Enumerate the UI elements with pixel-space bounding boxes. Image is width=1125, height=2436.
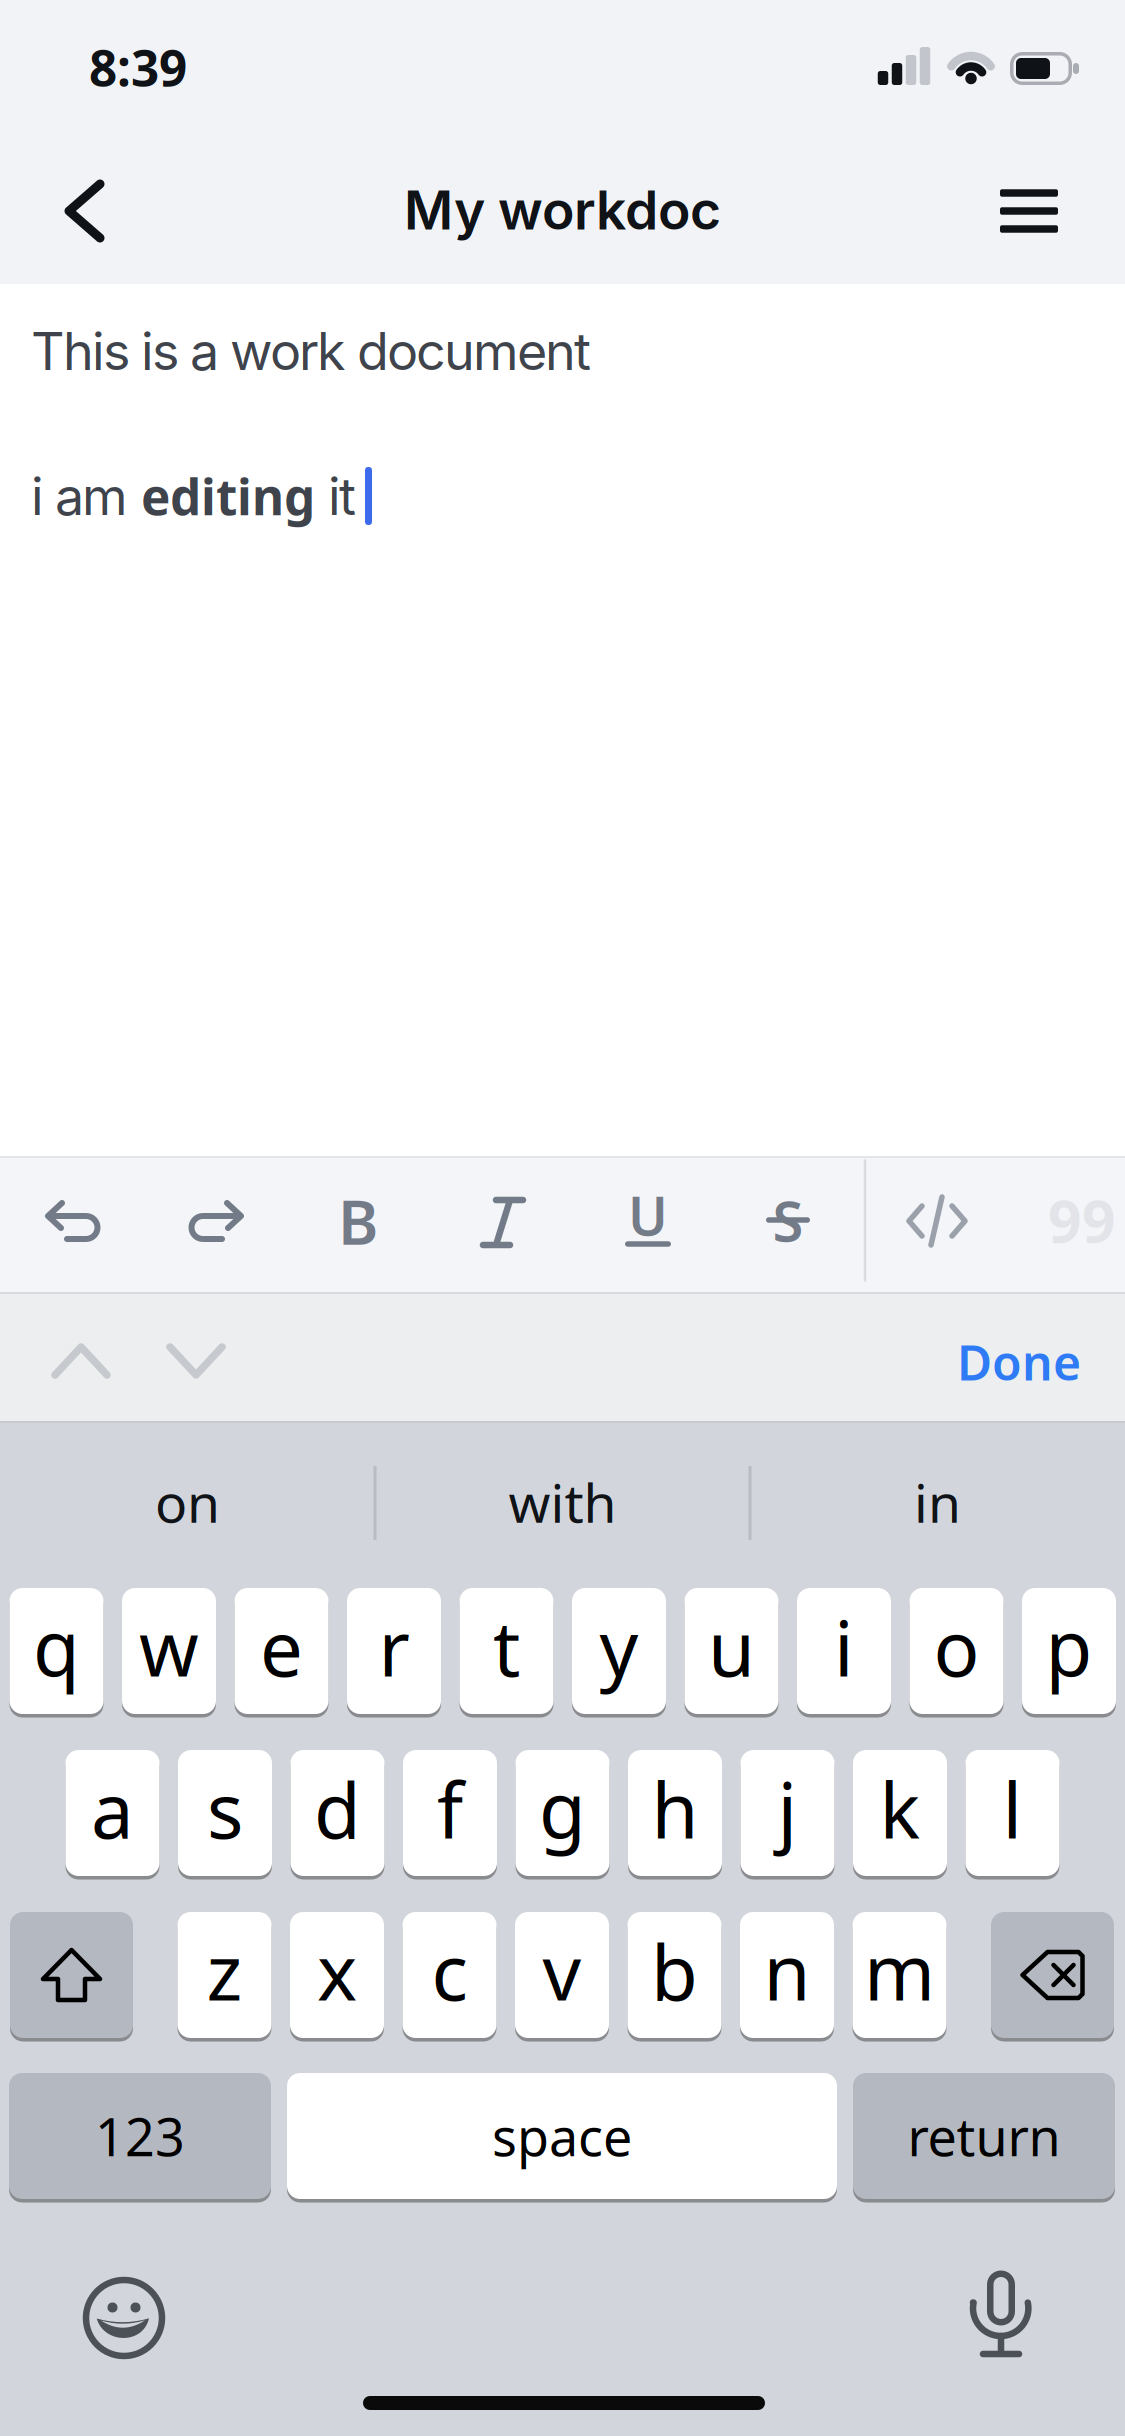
staticText: u [708,1596,755,1697]
button[interactable]: Done [957,1330,1081,1394]
staticText: m [864,1920,935,2021]
button[interactable]: m [852,1912,946,2038]
staticText: s [207,1758,243,1859]
staticText: t [493,1596,520,1697]
button[interactable]: 123 [9,2073,271,2199]
button[interactable]: h [628,1750,722,1876]
button[interactable] [481,1193,525,1251]
staticText: w [139,1596,199,1697]
staticText: c [431,1920,467,2021]
button[interactable] [45,1192,105,1252]
staticText: Done [957,1330,1081,1394]
staticText: space [492,2101,632,2171]
button[interactable]: p [1022,1588,1116,1714]
button[interactable]: a [65,1750,159,1876]
button[interactable]: return [853,2073,1115,2199]
button[interactable]: z [177,1912,271,2038]
button[interactable]: e [234,1588,328,1714]
button[interactable]: r [347,1588,441,1714]
button[interactable]: x [290,1912,384,2038]
button[interactable] [955,2258,1045,2368]
staticText: r [378,1596,409,1697]
button[interactable] [184,1192,244,1252]
staticText: k [879,1758,920,1859]
staticText: 123 [95,2101,185,2171]
button[interactable]: y [572,1588,666,1714]
button[interactable] [994,181,1064,241]
button[interactable] [905,1194,969,1248]
button[interactable]: w [122,1588,216,1714]
button[interactable]: s [178,1750,272,1876]
button[interactable] [57,176,117,246]
staticText: 8:39 [89,34,187,100]
staticText: j [777,1758,797,1859]
button[interactable]: i [797,1588,891,1714]
button[interactable]: with [397,1447,727,1557]
button[interactable] [168,1343,224,1379]
button[interactable]: U [616,1188,680,1252]
staticText: y [599,1596,638,1697]
staticText: b [651,1920,698,2021]
staticText: l [1002,1758,1022,1859]
button[interactable]: in [772,1447,1102,1557]
staticText: B [338,1180,378,1262]
staticText: editing [141,463,315,529]
staticText: This is a work document [31,319,591,382]
button[interactable]: j [740,1750,834,1876]
button[interactable]: v [515,1912,609,2038]
staticText: in [914,1467,961,1537]
staticText: f [437,1758,463,1859]
button[interactable] [53,1343,109,1379]
staticText: i am [31,464,141,527]
staticText: e [260,1596,303,1697]
staticText: z [206,1920,242,2021]
staticText: with [508,1467,616,1537]
staticText: q [33,1596,80,1697]
staticText: i [834,1596,854,1697]
staticText: d [314,1758,361,1859]
button[interactable]: b [627,1912,721,2038]
button[interactable] [79,2273,169,2363]
button[interactable]: u [684,1588,778,1714]
button[interactable]: n [740,1912,834,2038]
button[interactable]: k [853,1750,947,1876]
button[interactable]: c [402,1912,496,2038]
staticText: it [315,464,356,527]
button[interactable]: B [323,1181,393,1261]
staticText: S [772,1183,803,1257]
staticText: n [763,1920,810,2021]
staticText: o [933,1596,979,1697]
button[interactable]: g [515,1750,609,1876]
staticText: p [1045,1596,1092,1697]
button[interactable] [10,1912,133,2038]
button[interactable]: o [909,1588,1003,1714]
button[interactable]: on [22,1447,352,1557]
staticText: My workdoc [404,178,721,242]
button[interactable]: l [965,1750,1059,1876]
staticText: a [91,1758,134,1859]
button[interactable]: d [290,1750,384,1876]
staticText: g [539,1758,586,1859]
button[interactable]: q [9,1588,103,1714]
staticText: U [628,1180,668,1250]
button[interactable] [991,1912,1114,2038]
button[interactable]: S [756,1189,820,1253]
staticText: h [651,1758,698,1859]
button[interactable]: 99 [1007,1170,1125,1270]
button[interactable]: t [459,1588,553,1714]
staticText: v [542,1920,581,2021]
button[interactable]: f [403,1750,497,1876]
button[interactable]: space [287,2073,837,2199]
staticText: x [317,1920,357,2021]
staticText: on [155,1467,220,1537]
staticText: 99 [1048,1181,1116,1259]
staticText: return [907,2101,1060,2171]
